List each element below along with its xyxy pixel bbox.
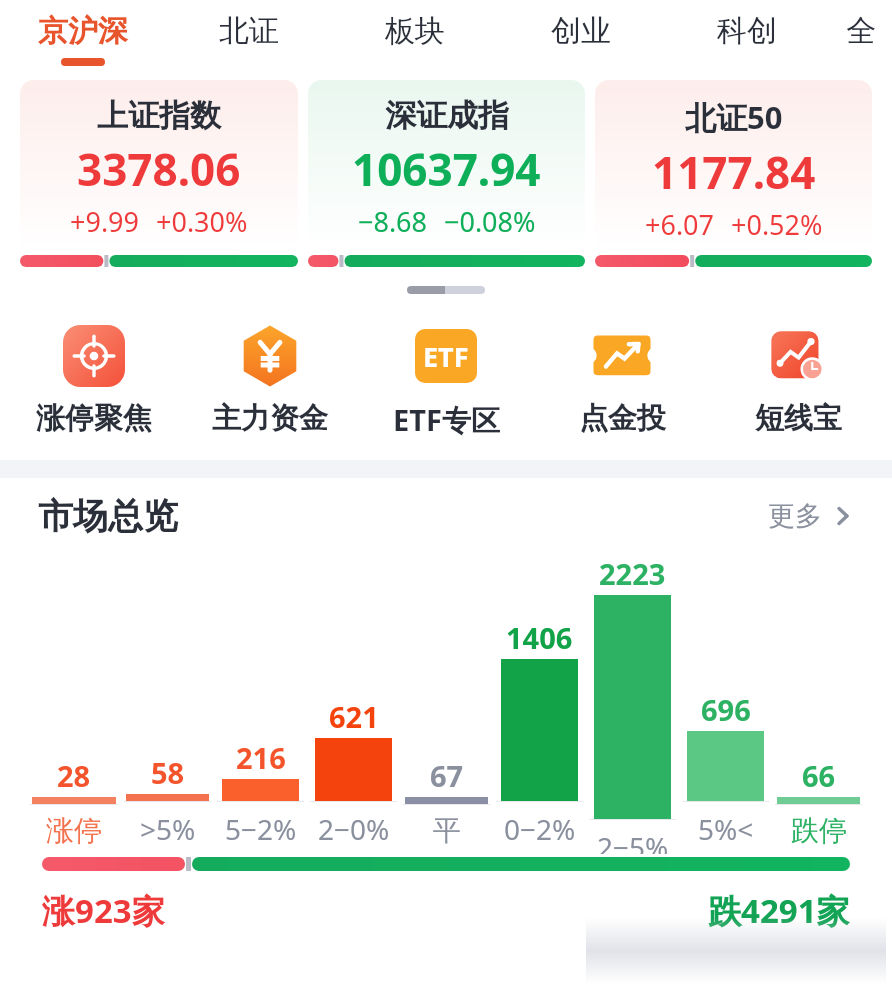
staticText: +0.30% — [156, 203, 248, 240]
button[interactable]: 点金投 — [542, 324, 702, 437]
button[interactable]: 696 — [682, 554, 769, 854]
other: 点金投 — [591, 325, 653, 387]
staticText: 短线宝 — [755, 400, 842, 437]
button[interactable]: 北证 — [166, 0, 332, 80]
staticText: 上证指数 — [97, 96, 221, 135]
staticText: 北证 — [219, 12, 279, 50]
staticText: 平 — [433, 813, 461, 848]
staticText: 1406 — [506, 618, 573, 657]
button[interactable]: 短线宝 — [718, 324, 878, 437]
staticText: 5%< — [698, 810, 754, 848]
staticText: 3378.06 — [77, 139, 241, 199]
staticText: 5−2% — [225, 810, 297, 848]
button[interactable]: 28 — [30, 554, 118, 854]
button[interactable]: 上证指数 — [20, 80, 298, 276]
button[interactable]: 更多 — [768, 499, 854, 533]
staticText: 2223 — [599, 554, 666, 593]
staticText: >5% — [140, 810, 196, 848]
button[interactable]: 67 — [403, 554, 490, 854]
button[interactable]: 京沪深 — [0, 0, 166, 80]
button[interactable]: 创业 — [498, 0, 664, 80]
button[interactable]: 科创 — [664, 0, 830, 80]
staticText: 58 — [151, 753, 185, 792]
other: 主力资金 — [239, 325, 301, 387]
button[interactable]: 621 — [310, 554, 397, 854]
staticText: 市场总览 — [38, 494, 178, 538]
staticText: 跌停 — [791, 813, 847, 848]
staticText: 1177.84 — [652, 142, 816, 202]
staticText: 京沪深 — [38, 12, 128, 50]
staticText: 10637.94 — [352, 139, 541, 199]
staticText: +6.07 — [645, 206, 715, 243]
other: 涨停聚焦 — [63, 325, 125, 387]
staticText: 216 — [236, 738, 286, 777]
button[interactable]: 1406 — [496, 554, 583, 854]
staticText: 跌4291家 — [708, 888, 850, 933]
staticText: 深证成指 — [385, 96, 509, 135]
button[interactable]: 2223 — [589, 554, 676, 854]
button[interactable]: 深证成指 — [308, 80, 585, 276]
staticText: 2−0% — [318, 810, 390, 848]
staticText: 北证50 — [685, 96, 783, 138]
staticText: 696 — [701, 690, 751, 729]
staticText: −8.68 — [358, 203, 428, 240]
staticText: 621 — [329, 697, 379, 736]
staticText: 涨923家 — [42, 888, 165, 933]
staticText: −0.08% — [444, 203, 536, 240]
button[interactable]: 涨停聚焦 — [14, 324, 174, 437]
staticText: 点金投 — [579, 400, 666, 437]
staticText: 创业 — [551, 12, 611, 50]
staticText: 2−5% — [597, 828, 669, 854]
staticText: 科创 — [717, 12, 777, 50]
staticText: 67 — [430, 756, 464, 795]
button[interactable]: 主力资金 — [190, 324, 350, 437]
staticText: 板块 — [385, 12, 445, 50]
button[interactable]: 北证50 — [595, 80, 872, 276]
staticText: 主力资金 — [212, 400, 328, 437]
button[interactable]: 全 — [830, 0, 892, 80]
button[interactable]: 板块 — [332, 0, 498, 80]
staticText: 涨停聚焦 — [36, 400, 152, 437]
staticText: ETF — [423, 338, 469, 375]
button[interactable]: 66 — [775, 554, 862, 854]
staticText: 0−2% — [504, 810, 576, 848]
staticText: ETF专区 — [393, 400, 500, 440]
staticText: 更多 — [768, 499, 822, 533]
staticText: +0.52% — [731, 206, 823, 243]
other: 短线宝 — [767, 325, 829, 387]
staticText: 66 — [802, 756, 836, 795]
staticText: 28 — [57, 756, 91, 795]
other: ETF专区 — [415, 329, 477, 383]
button[interactable]: 58 — [124, 554, 211, 854]
button[interactable]: 216 — [217, 554, 304, 854]
button[interactable]: ETF专区 — [366, 324, 526, 440]
staticText: 涨停 — [46, 813, 102, 848]
staticText: +9.99 — [70, 203, 140, 240]
staticText: 全 — [846, 12, 876, 50]
